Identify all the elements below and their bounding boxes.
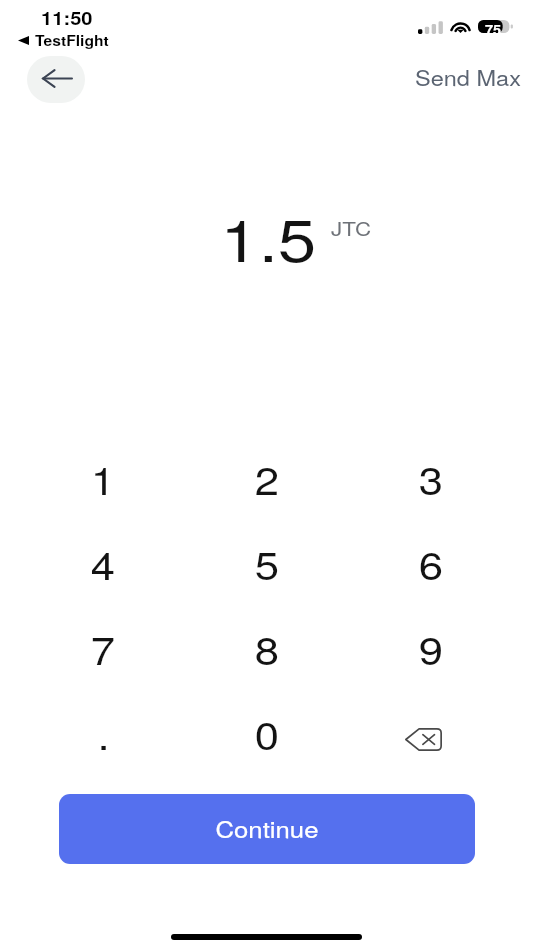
staticText: 75 (485, 20, 502, 39)
staticText: . (97, 705, 110, 761)
button[interactable]: . (21, 690, 185, 775)
staticText: 1 (91, 450, 115, 506)
button[interactable]: 5 (185, 520, 349, 605)
staticText: 4 (91, 535, 115, 591)
button[interactable]: Back (27, 56, 85, 103)
staticText: 1.5 (220, 195, 317, 278)
button[interactable]: 1 (21, 435, 185, 520)
button[interactable]: 8 (185, 605, 349, 690)
staticText: Continue (215, 812, 320, 845)
staticText: 9 (419, 620, 443, 676)
button[interactable]: 6 (349, 520, 513, 605)
staticText: 5 (255, 535, 279, 591)
staticText: 2 (255, 450, 279, 506)
button[interactable]: Backspace (349, 690, 513, 775)
staticText: TestFlight (35, 30, 109, 50)
staticText: 6 (419, 535, 443, 591)
button[interactable]: 7 (21, 605, 185, 690)
staticText: 8 (255, 620, 279, 676)
button[interactable]: Continue (59, 794, 475, 864)
staticText: 0 (255, 705, 279, 761)
button[interactable]: 2 (185, 435, 349, 520)
button[interactable]: 9 (349, 605, 513, 690)
button[interactable]: 0 (185, 690, 349, 775)
staticText: 11:50 (41, 5, 94, 31)
staticText: 7 (91, 620, 115, 676)
staticText: JTC (331, 214, 371, 241)
staticText: Send Max (415, 62, 521, 92)
staticText: 3 (419, 450, 443, 506)
button[interactable]: 4 (21, 520, 185, 605)
other: Backspace (405, 728, 442, 751)
button[interactable]: Send Max (415, 62, 510, 92)
button[interactable]: 3 (349, 435, 513, 520)
